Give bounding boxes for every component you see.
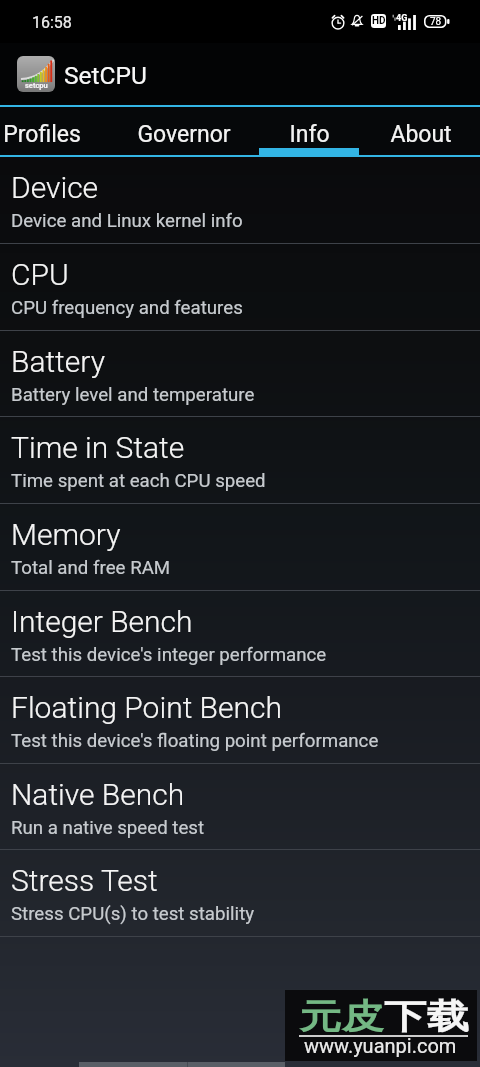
staticText: About xyxy=(390,121,452,148)
staticText: Memory xyxy=(11,517,121,552)
staticText: Battery xyxy=(11,344,105,379)
staticText: 元皮 xyxy=(299,995,384,1038)
staticText: HD xyxy=(372,15,386,27)
staticText: Stress CPU(s) to test stability xyxy=(11,903,255,925)
staticText: Time in State xyxy=(11,430,185,465)
staticText: Battery level and temperature xyxy=(11,384,255,406)
staticText: Test this device's integer performance xyxy=(11,644,327,666)
staticText: CPU frequency and features xyxy=(11,297,243,319)
staticText: www.yuanpi.com xyxy=(304,1034,457,1057)
staticText: Integer Bench xyxy=(11,604,193,639)
staticText: Governor xyxy=(137,121,231,148)
staticText: 下载 xyxy=(384,995,469,1038)
staticText: CPU xyxy=(11,257,69,292)
staticText: Native Bench xyxy=(11,777,185,812)
staticText: Run a native speed test xyxy=(11,817,205,839)
staticText: Total and free RAM xyxy=(11,557,171,579)
staticText: Profiles xyxy=(3,121,81,148)
staticText: Stress Test xyxy=(11,863,158,898)
staticText: 4G xyxy=(396,13,408,24)
button[interactable]: Profiles xyxy=(0,107,109,155)
staticText: setcpu xyxy=(25,81,48,90)
staticText: Floating Point Bench xyxy=(11,690,282,725)
staticText: Info xyxy=(289,121,330,148)
button[interactable]: About xyxy=(359,107,480,155)
button[interactable]: Device xyxy=(0,157,480,243)
staticText: Device xyxy=(11,170,99,205)
staticText: Test this device's floating point perfor… xyxy=(11,730,379,752)
button[interactable]: Stress Test xyxy=(0,850,480,936)
button[interactable]: Native Bench xyxy=(0,764,480,849)
button[interactable]: Info xyxy=(259,107,359,155)
button[interactable]: Time in State xyxy=(0,417,480,503)
button[interactable]: Memory xyxy=(0,504,480,590)
staticText: SetCPU xyxy=(64,61,147,90)
staticText: 16:58 xyxy=(32,13,72,32)
button[interactable]: Integer Bench xyxy=(0,591,480,676)
staticText: 78 xyxy=(430,16,442,28)
staticText: Device and Linux kernel info xyxy=(11,210,243,232)
staticText: Time spent at each CPU speed xyxy=(11,470,266,492)
button[interactable]: Governor xyxy=(109,107,259,155)
button[interactable]: Floating Point Bench xyxy=(0,677,480,763)
button[interactable]: CPU xyxy=(0,244,480,330)
button[interactable]: SetCPU app xyxy=(0,43,480,105)
button[interactable]: Battery xyxy=(0,331,480,416)
